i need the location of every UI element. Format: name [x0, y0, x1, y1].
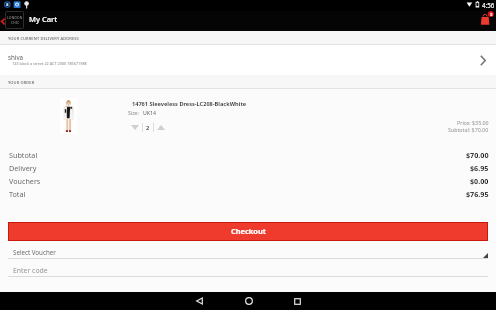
staticText: 4:56 [482, 1, 495, 9]
button[interactable]: shiva [0, 45, 496, 75]
button[interactable]: Home [224, 292, 273, 310]
staticText: Checkout [231, 226, 266, 236]
button[interactable]: London Chic home [5, 11, 24, 29]
button[interactable]: Enter code [8, 264, 488, 277]
staticText: Vouchers [9, 176, 41, 186]
staticText: $0.00 [470, 176, 489, 186]
button[interactable]: Shopping cart [476, 11, 496, 31]
button[interactable]: Back [0, 11, 6, 31]
staticText: $76.95 [466, 189, 489, 199]
staticText: Delivery [9, 163, 37, 173]
button[interactable]: Checkout [8, 222, 488, 241]
staticText: My Cart [29, 14, 58, 24]
staticText: Subtotal [9, 150, 38, 160]
staticText: UK14 [143, 109, 157, 116]
staticText: LONDON [7, 16, 23, 20]
staticText: 3 [490, 12, 493, 18]
button[interactable]: Back [175, 292, 224, 310]
button[interactable]: Increase quantity [154, 121, 167, 134]
button[interactable]: Decrease quantity [128, 121, 141, 134]
button[interactable]: Select Voucher [8, 246, 488, 259]
staticText: Size: [128, 109, 139, 116]
staticText: Price: $35.00 [457, 119, 489, 126]
staticText: Enter code [13, 266, 48, 275]
staticText: YOUR ORDER [8, 80, 35, 85]
staticText: 2 [146, 124, 150, 132]
staticText: CHIC [11, 21, 20, 25]
staticText: Total [9, 189, 26, 199]
button[interactable]: Recent apps [273, 292, 322, 310]
staticText: $70.00 [466, 150, 489, 160]
staticText: $6.95 [470, 163, 489, 173]
staticText: Subtotal: $70.00 [448, 126, 489, 133]
staticText: YOUR CURRENT DELIVERY ADDRESS [8, 36, 79, 41]
staticText: Select Voucher [13, 248, 56, 256]
staticText: 14761 Sleeveless Dress-LC208-BlackWhite [132, 100, 247, 108]
staticText: 123 block a street 22 ACT 2000 785671988 [12, 61, 87, 66]
staticText: shiva [8, 53, 23, 61]
